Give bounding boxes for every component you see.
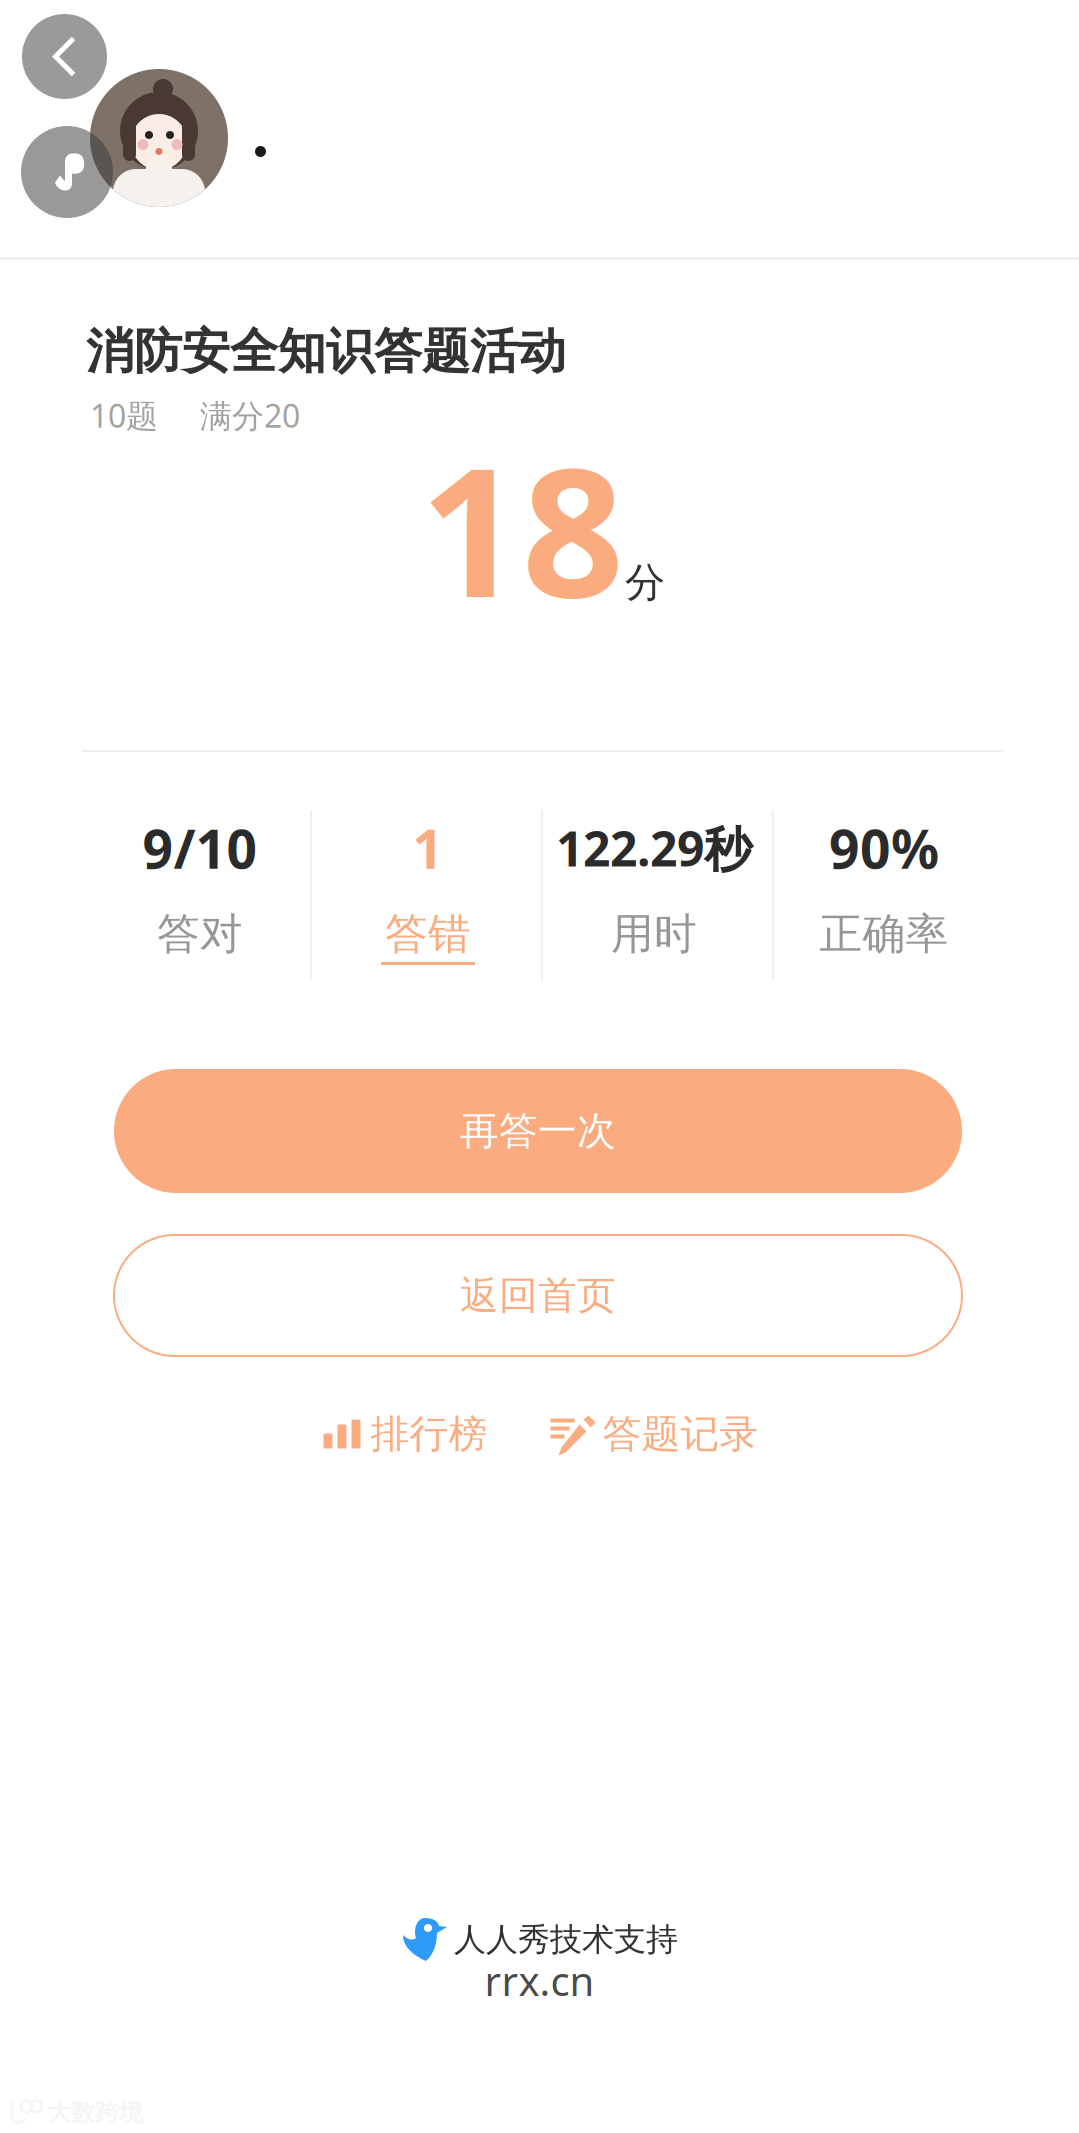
staticText: 大数跨境 <box>47 2098 143 2127</box>
staticText: 满分20 <box>200 394 300 436</box>
staticText: 答题记录 <box>602 1410 758 1458</box>
button[interactable]: 1 <box>314 810 542 980</box>
button[interactable]: Toggle music <box>21 126 113 218</box>
button[interactable]: 返回首页 <box>114 1235 962 1356</box>
staticText: 9/10 <box>142 813 257 883</box>
button[interactable]: 再答一次 <box>114 1069 962 1193</box>
staticText: 人人秀技术支持 <box>454 1920 678 1959</box>
staticText: 用时 <box>611 908 697 960</box>
staticText: rrx.cn <box>484 1954 594 2007</box>
staticText: 1 <box>412 813 443 883</box>
staticText: 返回首页 <box>460 1272 616 1319</box>
staticText: 答对 <box>157 908 243 960</box>
staticText: 消防安全知识答题活动 <box>86 322 566 381</box>
button[interactable]: Back <box>22 14 107 99</box>
button[interactable]: 答题记录 <box>550 1410 758 1458</box>
staticText: 18 <box>420 409 624 646</box>
staticText: 排行榜 <box>370 1410 487 1458</box>
staticText: 分 <box>625 558 665 607</box>
staticText: 90% <box>829 813 939 883</box>
staticText: 答错 <box>385 908 471 960</box>
staticText: 122.29秒 <box>556 816 752 880</box>
staticText: 正确率 <box>819 908 948 960</box>
staticText: 10题 <box>90 394 158 436</box>
button[interactable]: Profile photo <box>90 69 228 207</box>
button[interactable]: 排行榜 <box>320 1410 487 1458</box>
staticText: 再答一次 <box>460 1107 616 1155</box>
